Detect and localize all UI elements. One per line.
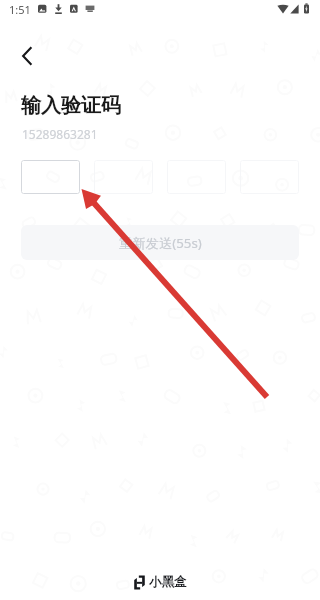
staticText: 重新发送(55s)	[119, 234, 202, 252]
button[interactable]: 重新发送(55s)	[21, 225, 299, 260]
staticText: 1:51	[9, 2, 31, 17]
button[interactable]: Back	[8, 38, 44, 74]
staticText: 15289863281	[22, 126, 98, 142]
staticText: 输入验证码	[21, 93, 121, 118]
button[interactable]: Code digit 1	[21, 160, 80, 194]
button[interactable]: Code digit 2	[94, 160, 153, 194]
button[interactable]: 小黑盒	[134, 574, 187, 590]
staticText: 小黑盒	[149, 574, 187, 590]
